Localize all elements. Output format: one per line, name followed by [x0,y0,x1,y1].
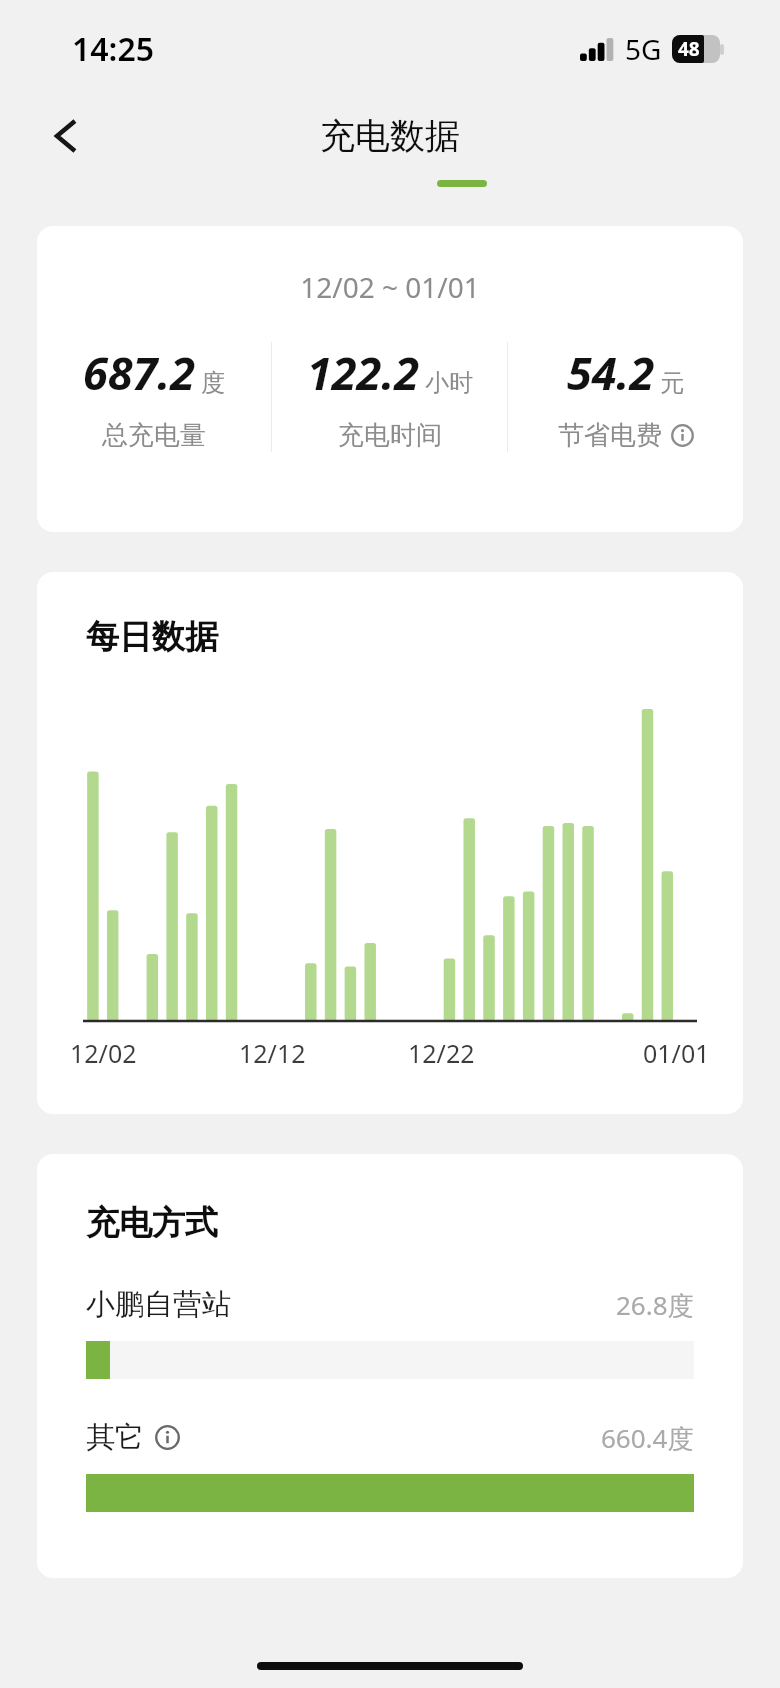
staticText: 01/01 [643,1036,710,1070]
staticText: 充电方式 [86,1202,218,1244]
button[interactable]: 122.2 [272,342,507,452]
staticText: 54.2 [567,342,655,403]
staticText: 小时 [425,368,473,398]
button[interactable]: 小鹏自营站 [37,1286,743,1379]
staticText: 5G [625,30,662,68]
button[interactable]: Back [32,102,100,170]
staticText: 12/12 [239,1036,306,1070]
staticText: 48 [678,36,700,62]
staticText: 12/02 [70,1036,137,1070]
staticText: 687.2 [83,342,196,403]
staticText: 元 [660,368,684,398]
button[interactable]: 54.2 [508,342,743,452]
button[interactable]: 其它 [37,1419,743,1512]
staticText: 660.4度 [601,1420,694,1456]
staticText: 122.2 [307,342,420,403]
staticText: 26.8度 [616,1287,694,1323]
staticText: 总充电量 [102,419,206,452]
staticText: 12/02 ~ 01/01 [37,268,743,306]
staticText: 14:25 [72,27,155,71]
staticText: 其它 [86,1419,144,1456]
staticText: 充电数据 [320,114,460,158]
staticText: 充电时间 [338,419,442,452]
button[interactable]: 687.2 [37,342,271,452]
staticText: 度 [201,368,225,398]
staticText: 小鹏自营站 [86,1286,231,1323]
staticText: 每日数据 [86,616,218,658]
staticText: 12/22 [408,1036,475,1070]
staticText: 节省电费 [558,419,662,452]
